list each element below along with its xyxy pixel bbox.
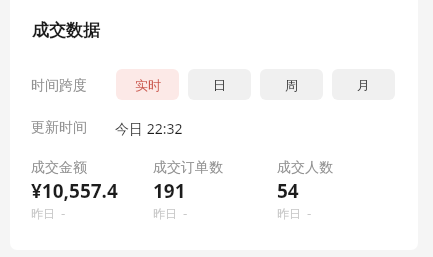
button[interactable]: 成交金额 — [31, 159, 153, 221]
staticText: 成交金额 — [31, 159, 87, 177]
staticText: 54 — [277, 178, 299, 204]
staticText: 今日 22:32 — [115, 119, 183, 138]
staticText: ¥10,557.4 — [31, 178, 118, 204]
button[interactable]: 实时 — [116, 69, 179, 100]
button[interactable]: 成交订单数 — [153, 159, 277, 221]
staticText: 月 — [357, 77, 370, 93]
staticText: 昨日 - — [31, 205, 66, 221]
button[interactable]: 日 — [188, 69, 251, 100]
staticText: 时间跨度 — [31, 77, 87, 95]
staticText: 昨日 - — [153, 205, 188, 221]
staticText: 成交订单数 — [153, 159, 223, 177]
button[interactable]: 成交人数 — [277, 159, 377, 221]
staticText: 成交人数 — [277, 159, 333, 177]
button[interactable]: 周 — [260, 69, 323, 100]
staticText: 成交数据 — [32, 20, 100, 41]
staticText: 周 — [285, 77, 298, 93]
staticText: 实时 — [135, 77, 161, 93]
staticText: 昨日 - — [277, 205, 312, 221]
button[interactable]: 月 — [332, 69, 395, 100]
staticText: 更新时间 — [31, 119, 87, 137]
staticText: 191 — [153, 178, 186, 204]
staticText: 日 — [213, 77, 226, 93]
